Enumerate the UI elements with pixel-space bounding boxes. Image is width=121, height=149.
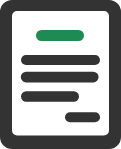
button[interactable]: Document (0, 0, 121, 149)
